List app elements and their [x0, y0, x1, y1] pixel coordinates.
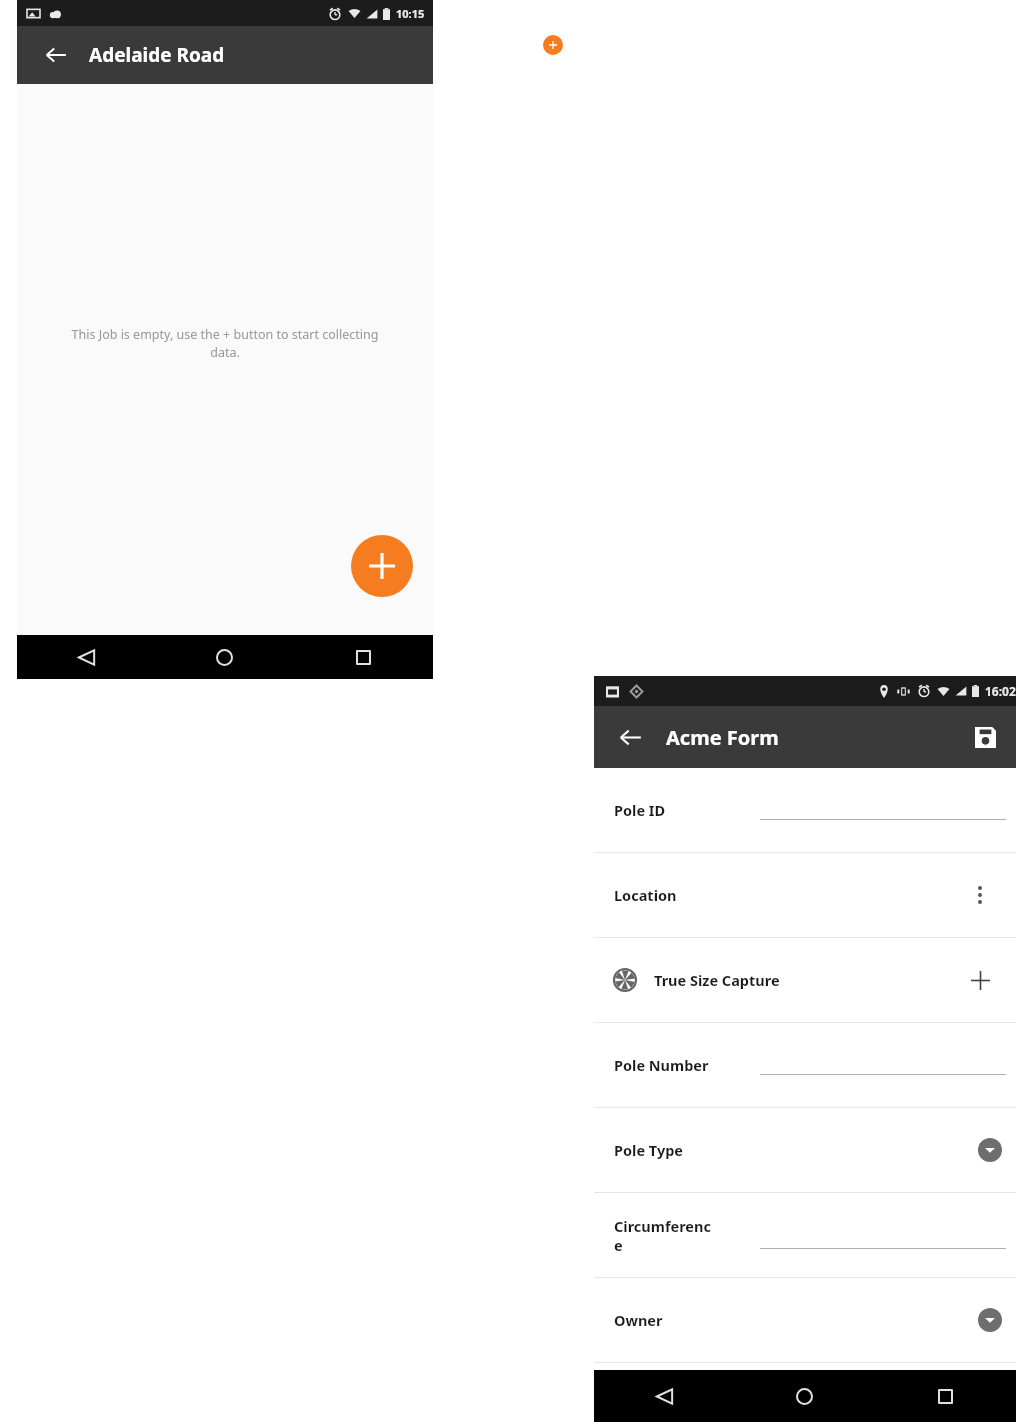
button[interactable]: Add data [351, 535, 413, 597]
button[interactable]: Pole Number [594, 1023, 1016, 1107]
button[interactable]: Home [155, 635, 294, 679]
button[interactable]: Back [612, 719, 648, 755]
staticText: True Size Capture [654, 970, 966, 990]
button[interactable]: Owner [594, 1278, 1016, 1362]
staticText: Adelaide Road [89, 42, 225, 68]
staticText: Circumferenc e [614, 1216, 736, 1255]
button[interactable]: True Size Capture [594, 938, 1016, 1022]
button[interactable]: Back [39, 38, 73, 72]
button[interactable]: Back [17, 635, 155, 679]
staticText: Pole Type [614, 1140, 978, 1160]
button[interactable]: Home [734, 1370, 875, 1422]
staticText: 16:02 [985, 683, 1016, 699]
button[interactable]: Open Owner options [978, 1308, 1002, 1332]
button[interactable]: Pole ID [594, 768, 1016, 852]
button[interactable]: Save [966, 718, 1004, 756]
staticText: Pole ID [614, 800, 736, 820]
button[interactable]: Open Pole Type options [978, 1138, 1002, 1162]
button[interactable]: Circumferenc e [594, 1193, 1016, 1277]
button[interactable]: Recent apps [294, 635, 433, 679]
staticText: Location [614, 885, 966, 905]
button[interactable]: Pole Type [594, 1108, 1016, 1192]
button[interactable]: Back [594, 1370, 734, 1422]
button[interactable]: Add capture [966, 966, 994, 994]
staticText: This Job is empty, use the + button to s… [69, 326, 381, 361]
button[interactable]: Location [594, 853, 1016, 937]
staticText: Pole Number [614, 1055, 736, 1075]
button[interactable]: Add [543, 35, 563, 55]
staticText: 10:15 [396, 6, 425, 21]
button[interactable]: More options [966, 881, 994, 909]
staticText: Owner [614, 1310, 978, 1330]
staticText: Acme Form [666, 724, 779, 751]
button[interactable]: Recent apps [875, 1370, 1016, 1422]
